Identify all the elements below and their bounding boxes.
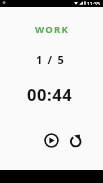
staticText: 00:44 [27, 83, 73, 105]
staticText: WORK [35, 23, 69, 36]
staticText: 1 / 5 [36, 52, 65, 67]
button[interactable]: Start timer [44, 133, 59, 148]
button[interactable]: Reset timer [68, 133, 83, 148]
staticText: 11:35 [87, 1, 100, 5]
